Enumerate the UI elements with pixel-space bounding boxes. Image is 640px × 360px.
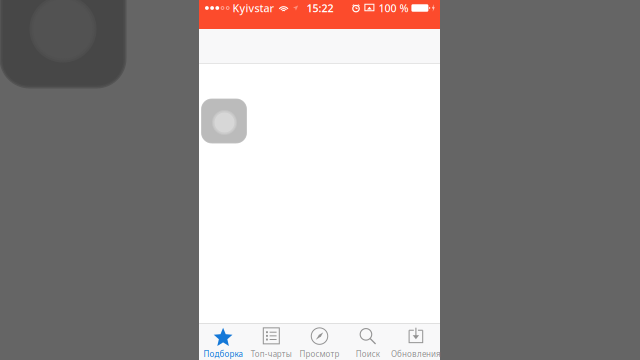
staticText: 15:22 [307,1,334,15]
button[interactable]: Поиск [344,323,392,360]
button[interactable]: Подборка [199,323,247,360]
staticText: 100 % [378,1,408,15]
button[interactable]: Топ-чарты [247,323,295,360]
staticText: Поиск [356,348,380,359]
button[interactable]: Обновления [392,323,440,360]
button[interactable]: Просмотр [295,323,344,360]
staticText: Топ-чарты [251,348,292,359]
staticText: Обновления [391,348,441,359]
staticText: Подборка [204,348,243,359]
staticText: Kyivstar [233,1,275,15]
staticText: Просмотр [299,348,339,359]
